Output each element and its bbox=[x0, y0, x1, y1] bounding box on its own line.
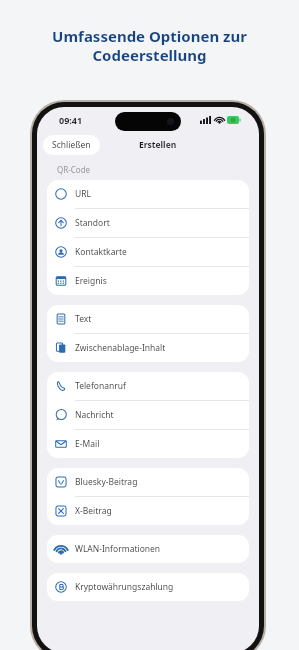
staticText: Standort bbox=[75, 217, 110, 229]
button[interactable]: Nachricht bbox=[47, 401, 249, 429]
staticText: E-Mail bbox=[75, 438, 100, 450]
button[interactable]: Kryptowährungszahlung bbox=[47, 573, 249, 601]
button[interactable]: E-Mail bbox=[47, 430, 249, 458]
staticText: Erstellen bbox=[139, 139, 177, 151]
staticText: X-Beitrag bbox=[75, 505, 112, 517]
staticText: Ereignis bbox=[75, 275, 107, 287]
button[interactable]: Standort bbox=[47, 209, 249, 237]
button[interactable]: URL bbox=[47, 180, 249, 208]
staticText: URL bbox=[75, 188, 91, 200]
staticText: QR-Code bbox=[57, 164, 91, 175]
button[interactable]: WLAN-Informationen bbox=[47, 535, 249, 563]
button[interactable]: Kontaktkarte bbox=[47, 238, 249, 266]
staticText: Kontaktkarte bbox=[75, 246, 127, 258]
staticText: Telefonanruf bbox=[75, 380, 126, 392]
staticText: Umfassende Optionen zur Codeerstellung bbox=[18, 26, 281, 65]
button[interactable]: X-Beitrag bbox=[47, 497, 249, 525]
button[interactable]: Telefonanruf bbox=[47, 372, 249, 400]
staticText: 09:41 bbox=[59, 114, 83, 126]
staticText: Kryptowährungszahlung bbox=[75, 581, 174, 593]
button[interactable]: Bluesky-Beitrag bbox=[47, 468, 249, 496]
staticText: WLAN-Informationen bbox=[75, 543, 161, 555]
button[interactable]: Ereignis bbox=[47, 267, 249, 295]
button[interactable]: Erstellen bbox=[135, 135, 181, 155]
staticText: Bluesky-Beitrag bbox=[75, 476, 138, 488]
staticText: Nachricht bbox=[75, 409, 114, 421]
staticText: Schließen bbox=[52, 139, 91, 151]
staticText: Zwischenablage-Inhalt bbox=[75, 342, 166, 354]
button[interactable]: Zwischenablage-Inhalt bbox=[47, 334, 249, 362]
button[interactable]: Schließen bbox=[43, 135, 100, 155]
button[interactable]: Text bbox=[47, 305, 249, 333]
staticText: Text bbox=[75, 313, 92, 325]
